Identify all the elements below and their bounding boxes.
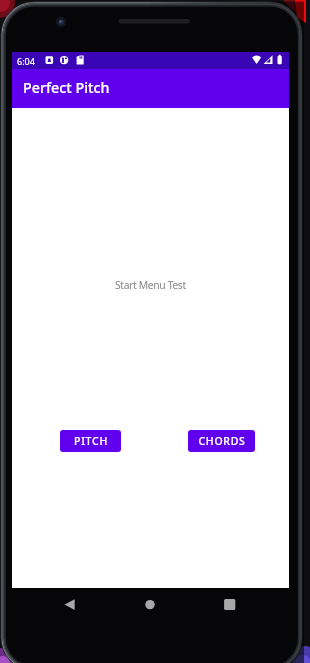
button[interactable]: CHORDS — [188, 430, 255, 452]
button[interactable]: PITCH — [60, 430, 121, 452]
staticText: Perfect Pitch — [23, 78, 110, 97]
button[interactable]: Back — [52, 591, 88, 619]
button[interactable]: Recent apps — [212, 591, 248, 619]
staticText: PITCH — [74, 434, 108, 448]
staticText: 6:04 — [17, 55, 35, 67]
button[interactable]: Home — [132, 591, 168, 619]
staticText: CHORDS — [198, 434, 246, 448]
button[interactable]: Perfect Pitch — [12, 69, 289, 108]
staticText: Start Menu Test — [115, 278, 186, 292]
